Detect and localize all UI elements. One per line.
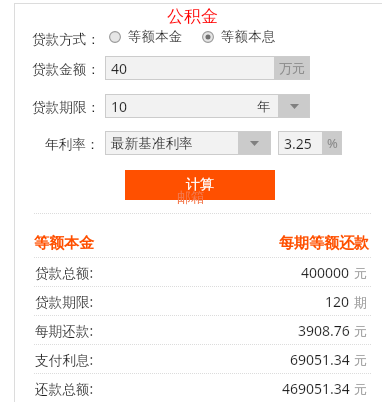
staticText: 计算	[186, 176, 214, 194]
staticText: 3908.76	[298, 321, 350, 340]
button[interactable]: 最新基准利率	[105, 131, 271, 155]
staticText: 元	[354, 352, 367, 368]
button[interactable]: 还款总额:	[0, 375, 382, 402]
staticText: 元	[354, 323, 367, 339]
button[interactable]: 40	[105, 56, 310, 80]
button[interactable]: 支付利息:	[0, 346, 382, 373]
staticText: 40	[111, 59, 128, 78]
staticText: 10	[111, 97, 128, 116]
staticText: 贷款金额：	[32, 61, 100, 78]
staticText: 年利率：	[45, 136, 100, 153]
button[interactable]: 邮箱	[176, 189, 206, 205]
button[interactable]: 选择利率类型	[238, 131, 271, 155]
staticText: 等额本金	[34, 234, 94, 253]
staticText: 元	[354, 265, 367, 281]
staticText: %	[327, 134, 338, 152]
staticText: 贷款期限：	[32, 99, 100, 116]
button[interactable]: 等额本金	[109, 28, 183, 45]
staticText: 120	[325, 292, 350, 311]
button[interactable]: 贷款总额:	[0, 259, 382, 286]
staticText: 每期还款:	[35, 321, 94, 340]
staticText: 年	[257, 98, 270, 114]
staticText: 邮箱	[177, 189, 205, 205]
staticText: 最新基准利率	[111, 135, 193, 152]
staticText: 万元	[279, 60, 305, 76]
staticText: 贷款方式：	[32, 31, 100, 48]
button[interactable]: 选择期限单位	[278, 94, 310, 118]
button[interactable]: 贷款期限:	[0, 288, 382, 315]
staticText: 贷款总额:	[35, 263, 94, 282]
button[interactable]: 等额本息	[202, 28, 276, 45]
staticText: 每期等额还款	[279, 234, 369, 253]
button[interactable]: 10	[105, 94, 310, 118]
staticText: 贷款期限:	[35, 292, 94, 311]
staticText: 还款总额:	[35, 379, 94, 398]
staticText: 元	[354, 381, 367, 397]
staticText: 等额本金	[128, 28, 183, 45]
staticText: 69051.34	[290, 350, 350, 369]
staticText: 期	[354, 294, 367, 310]
button[interactable]: 每期还款:	[0, 317, 382, 344]
staticText: 支付利息:	[35, 350, 94, 369]
staticText: 3.25	[284, 134, 312, 153]
staticText: 等额本息	[221, 28, 276, 45]
staticText: 公积金	[167, 6, 218, 27]
button[interactable]: 计算	[125, 170, 275, 200]
staticText: 400000	[301, 263, 350, 282]
staticText: 469051.34	[282, 379, 350, 398]
button[interactable]: 3.25	[278, 131, 342, 155]
